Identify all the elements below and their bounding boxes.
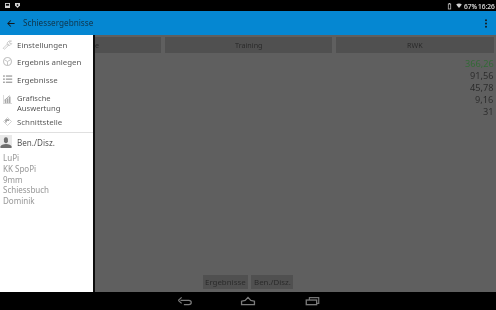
button[interactable]: More options	[479, 16, 493, 30]
button[interactable]: Ergebnisse	[0, 72, 93, 88]
staticText: 31	[483, 105, 494, 118]
button[interactable]: Dominik	[0, 195, 93, 206]
staticText: Grafische	[17, 93, 51, 103]
staticText: 16:26	[478, 2, 495, 11]
button[interactable]: Recents	[290, 292, 335, 310]
staticText: 9,16	[475, 93, 494, 106]
staticText: Schnittstelle	[17, 117, 63, 128]
button[interactable]: Ergebnisse	[0, 37, 161, 53]
staticText: Ergebnis anlegen	[17, 57, 82, 68]
staticText: 91,56	[470, 69, 494, 82]
staticText: Ergebnisse	[205, 277, 246, 288]
button[interactable]: Back	[162, 292, 207, 310]
staticText: 67%	[464, 2, 478, 11]
button[interactable]: Einstellungen	[0, 37, 93, 53]
staticText: Ergebnisse	[17, 75, 58, 86]
button[interactable]: Ben./Disz.	[251, 275, 293, 289]
staticText: KK SpoPi	[3, 163, 37, 174]
staticText: Schiessbuch	[3, 184, 50, 195]
button[interactable]: KK SpoPi	[0, 163, 93, 174]
button[interactable]: Training	[165, 37, 332, 53]
button[interactable]: Ergebnis anlegen	[0, 54, 93, 70]
staticText: Ergebnisse	[62, 40, 100, 50]
button[interactable]: Schnittstelle	[0, 114, 93, 130]
button[interactable]: Home	[225, 292, 270, 310]
button[interactable]: Ergebnisse	[203, 275, 248, 289]
staticText: RWK	[407, 40, 423, 50]
staticText: LuPi	[3, 152, 20, 163]
button[interactable]: Schiessbuch	[0, 184, 93, 195]
staticText: Training	[235, 40, 263, 50]
staticText: 45,78	[470, 81, 494, 94]
button[interactable]: LuPi	[0, 152, 93, 163]
button[interactable]: Back	[3, 15, 19, 31]
staticText: Ben./Disz.	[17, 137, 55, 148]
staticText: 9mm	[3, 174, 23, 185]
button[interactable]: 9mm	[0, 174, 93, 185]
staticText: Dominik	[3, 195, 35, 206]
staticText: Ben./Disz.	[254, 277, 291, 288]
staticText: 366,26	[465, 57, 494, 70]
staticText: Schiessergebnisse	[23, 17, 94, 28]
staticText: Einstellungen	[17, 40, 68, 51]
staticText: Auswertung	[17, 103, 61, 113]
